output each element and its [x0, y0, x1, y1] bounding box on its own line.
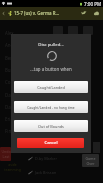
staticText: Cancel — [44, 140, 58, 146]
button[interactable]: Upload to cloud — [90, 7, 103, 19]
staticText: Dan — [5, 92, 14, 98]
button[interactable]: Game Over — [82, 154, 99, 167]
staticText: Dave — [5, 104, 16, 110]
staticText: Out of Bounds — [38, 124, 64, 129]
staticText: Eric — [5, 116, 13, 122]
button[interactable]: Caught/Landed - no hang time — [14, 101, 88, 113]
staticText: Jack Brisson — [35, 170, 57, 175]
button[interactable]: Cancel — [17, 138, 84, 148]
staticText: Game Over — [85, 156, 96, 166]
staticText: Undo Last — [1, 149, 11, 159]
staticText: Burt — [5, 67, 14, 73]
staticText: Alex — [5, 30, 14, 36]
button[interactable] — [53, 26, 63, 35]
staticText: 7:00 PM — [84, 1, 102, 7]
staticText: Andy — [5, 42, 16, 48]
staticText: Finn — [5, 128, 14, 134]
staticText: ...tap a button when — [30, 66, 72, 72]
staticText: Caught/Landed — [37, 85, 65, 90]
staticText: D-by Marker — [35, 156, 58, 161]
button[interactable] — [68, 26, 78, 35]
button[interactable]: Undo Last — [0, 147, 11, 161]
staticText: Caught/Landed - no hang time — [27, 105, 75, 109]
staticText: Ben — [5, 55, 14, 61]
button[interactable]: Caught/Landed — [14, 81, 88, 93]
button[interactable] — [83, 26, 93, 35]
button[interactable]: Share on Twitter — [77, 7, 90, 19]
staticText: Cory — [5, 79, 15, 85]
button[interactable]: Back — [0, 7, 6, 19]
staticText: aside teamming — [4, 162, 21, 172]
staticText: Disc pulled... — [38, 41, 64, 47]
button[interactable]: Out of Bounds — [14, 120, 88, 132]
staticText: 15-7 (us) v. Germa R... — [14, 10, 60, 16]
